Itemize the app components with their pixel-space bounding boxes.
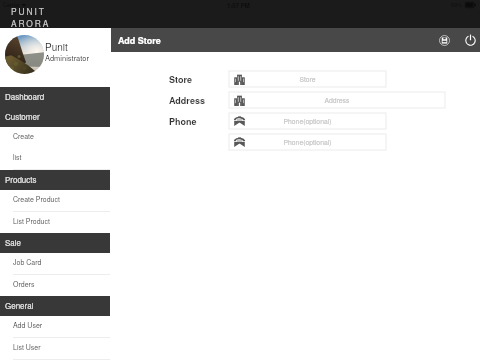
- staticText: Store: [169, 73, 192, 86]
- staticText: Store: [229, 74, 386, 84]
- button[interactable]: Sale: [0, 233, 110, 253]
- staticText: Customer: [5, 111, 40, 122]
- staticText: List Product: [13, 216, 50, 226]
- button[interactable]: Job Card: [0, 253, 110, 275]
- button[interactable]: Store: [229, 71, 386, 87]
- staticText: Create: [13, 131, 34, 141]
- button[interactable]: Dashboard: [0, 87, 110, 107]
- staticText: Phone(optional): [229, 116, 386, 126]
- staticText: Products: [5, 174, 37, 185]
- button[interactable]: Products: [0, 170, 110, 190]
- button[interactable]: Power: [461, 31, 479, 49]
- button[interactable]: Phone(optional): [229, 134, 386, 150]
- staticText: PUNIT: [11, 5, 46, 17]
- staticText: Create Product: [13, 194, 60, 204]
- button[interactable]: Customer: [0, 107, 110, 127]
- button[interactable]: General: [0, 296, 110, 316]
- staticText: Address: [169, 94, 205, 107]
- staticText: Add User: [13, 320, 43, 330]
- button[interactable]: Add User: [0, 316, 110, 338]
- staticText: ARORA: [11, 17, 51, 29]
- button[interactable]: Create: [0, 127, 110, 149]
- button[interactable]: Phone(optional): [229, 113, 386, 129]
- staticText: Punit: [45, 40, 68, 54]
- staticText: Dashboard: [5, 91, 45, 102]
- staticText: Job Card: [13, 257, 42, 267]
- button[interactable]: Orders: [0, 275, 110, 297]
- button[interactable]: List User: [0, 338, 110, 360]
- button[interactable]: List Product: [0, 212, 110, 234]
- staticText: Carrier: [3, 1, 20, 9]
- button[interactable]: list: [0, 148, 110, 170]
- button[interactable]: Address: [229, 92, 445, 108]
- staticText: 1:07 PM: [227, 1, 250, 10]
- staticText: General: [5, 300, 34, 311]
- staticText: Address: [229, 95, 445, 105]
- staticText: List User: [13, 342, 41, 352]
- staticText: list: [13, 152, 22, 162]
- staticText: Phone(optional): [229, 137, 386, 147]
- staticText: Sale: [5, 237, 22, 248]
- button[interactable]: Save: [435, 31, 453, 49]
- staticText: Orders: [13, 279, 35, 289]
- staticText: Administrator: [45, 52, 89, 63]
- staticText: Phone: [169, 115, 197, 128]
- button[interactable]: Create Product: [0, 190, 110, 212]
- staticText: Add Store: [118, 34, 161, 47]
